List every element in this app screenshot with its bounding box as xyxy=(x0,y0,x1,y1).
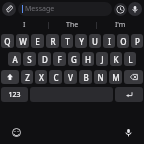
staticText: L xyxy=(128,54,133,65)
button[interactable]: V xyxy=(64,70,77,84)
button[interactable]: Enter xyxy=(115,87,143,102)
button[interactable]: E xyxy=(31,34,44,48)
button[interactable]: J xyxy=(96,52,108,66)
staticText: The xyxy=(66,20,79,30)
button[interactable]: G xyxy=(68,52,80,66)
staticText: W xyxy=(19,36,27,47)
staticText: T xyxy=(65,36,70,47)
button[interactable]: W xyxy=(16,34,29,48)
button[interactable]: L xyxy=(124,52,136,66)
button[interactable]: M xyxy=(109,70,122,84)
button[interactable]: P xyxy=(131,34,143,48)
button[interactable]: F xyxy=(53,52,66,66)
button[interactable]: B xyxy=(79,70,92,84)
button[interactable]: Voice input xyxy=(128,2,142,16)
button[interactable]: A xyxy=(8,52,21,66)
button[interactable]: Q xyxy=(1,34,14,48)
staticText: D xyxy=(42,54,48,65)
staticText: P xyxy=(135,36,140,47)
button[interactable]: I xyxy=(0,18,48,32)
staticText: S xyxy=(27,54,32,65)
button[interactable]: O xyxy=(117,34,129,48)
button[interactable]: Y xyxy=(75,34,87,48)
staticText: U xyxy=(92,36,98,47)
button[interactable]: Stickers xyxy=(114,3,127,16)
button[interactable]: X xyxy=(35,70,47,84)
staticText: R xyxy=(50,36,56,47)
staticText: K xyxy=(113,54,119,65)
staticText: Z xyxy=(25,72,30,83)
staticText: J xyxy=(101,54,104,65)
staticText: A xyxy=(12,54,18,65)
staticText: H xyxy=(85,54,91,65)
staticText: I'm xyxy=(115,20,126,30)
button[interactable]: U xyxy=(89,34,101,48)
button[interactable]: I'm xyxy=(97,18,144,32)
button[interactable]: 123 xyxy=(1,87,28,102)
staticText: O xyxy=(120,36,127,47)
button[interactable]: Z xyxy=(21,70,33,84)
staticText: M xyxy=(112,72,120,83)
staticText: G xyxy=(71,54,77,65)
button[interactable]: Backspace xyxy=(124,70,143,84)
staticText: Y xyxy=(79,36,84,47)
button[interactable]: S xyxy=(23,52,36,66)
button[interactable]: K xyxy=(110,52,122,66)
staticText: F xyxy=(57,54,62,65)
button[interactable]: H xyxy=(82,52,94,66)
button[interactable]: Message xyxy=(18,2,112,16)
button[interactable]: Emoji xyxy=(8,124,24,140)
staticText: Message xyxy=(25,4,55,14)
button[interactable]: I xyxy=(103,34,115,48)
staticText: V xyxy=(68,72,73,83)
button[interactable]: Microphone xyxy=(120,124,136,140)
button[interactable]: Shift xyxy=(1,70,19,84)
button[interactable]: The xyxy=(49,18,96,32)
button[interactable]: N xyxy=(94,70,107,84)
staticText: C xyxy=(53,72,59,83)
staticText: B xyxy=(83,72,89,83)
button[interactable]: D xyxy=(38,52,51,66)
staticText: X xyxy=(39,72,44,83)
button[interactable]: Attach xyxy=(2,2,16,16)
button[interactable]: R xyxy=(46,34,59,48)
button[interactable]: T xyxy=(61,34,73,48)
staticText: I xyxy=(108,36,111,47)
staticText: 123 xyxy=(8,90,21,100)
staticText: E xyxy=(35,36,40,47)
staticText: Q xyxy=(4,36,11,47)
staticText: I xyxy=(23,20,26,30)
staticText: N xyxy=(97,72,104,83)
button[interactable]: C xyxy=(49,70,62,84)
